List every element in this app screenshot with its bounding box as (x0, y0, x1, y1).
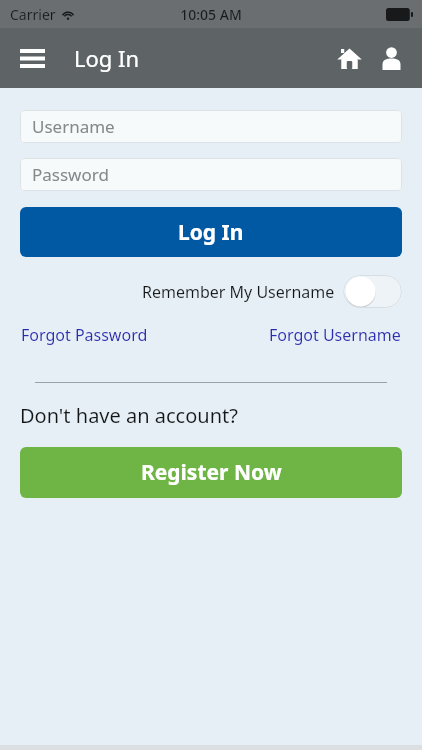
staticText: Remember My Username (142, 281, 335, 303)
button[interactable]: Log In (20, 207, 402, 257)
button[interactable]: Username (20, 110, 402, 143)
staticText: Forgot Password (21, 324, 148, 346)
staticText: Register Now (141, 458, 282, 487)
button[interactable]: Account (374, 41, 408, 75)
button[interactable]: Forgot Username (269, 324, 401, 346)
staticText: Log In (74, 43, 140, 73)
staticText: 10:05 AM (180, 5, 242, 24)
staticText: Username (32, 115, 115, 138)
button[interactable]: Home (332, 41, 366, 75)
button[interactable] (343, 275, 402, 308)
staticText: Log In (178, 218, 244, 247)
button[interactable]: Register Now (20, 447, 402, 498)
button[interactable]: Password (20, 158, 402, 191)
staticText: Don't have an account? (20, 402, 238, 429)
staticText: Carrier (10, 5, 56, 24)
staticText: Password (32, 163, 109, 186)
button[interactable]: Forgot Password (21, 324, 148, 346)
button[interactable]: Remember My Username (142, 275, 402, 308)
staticText: Forgot Username (269, 324, 401, 346)
button[interactable]: Menu (14, 40, 50, 76)
